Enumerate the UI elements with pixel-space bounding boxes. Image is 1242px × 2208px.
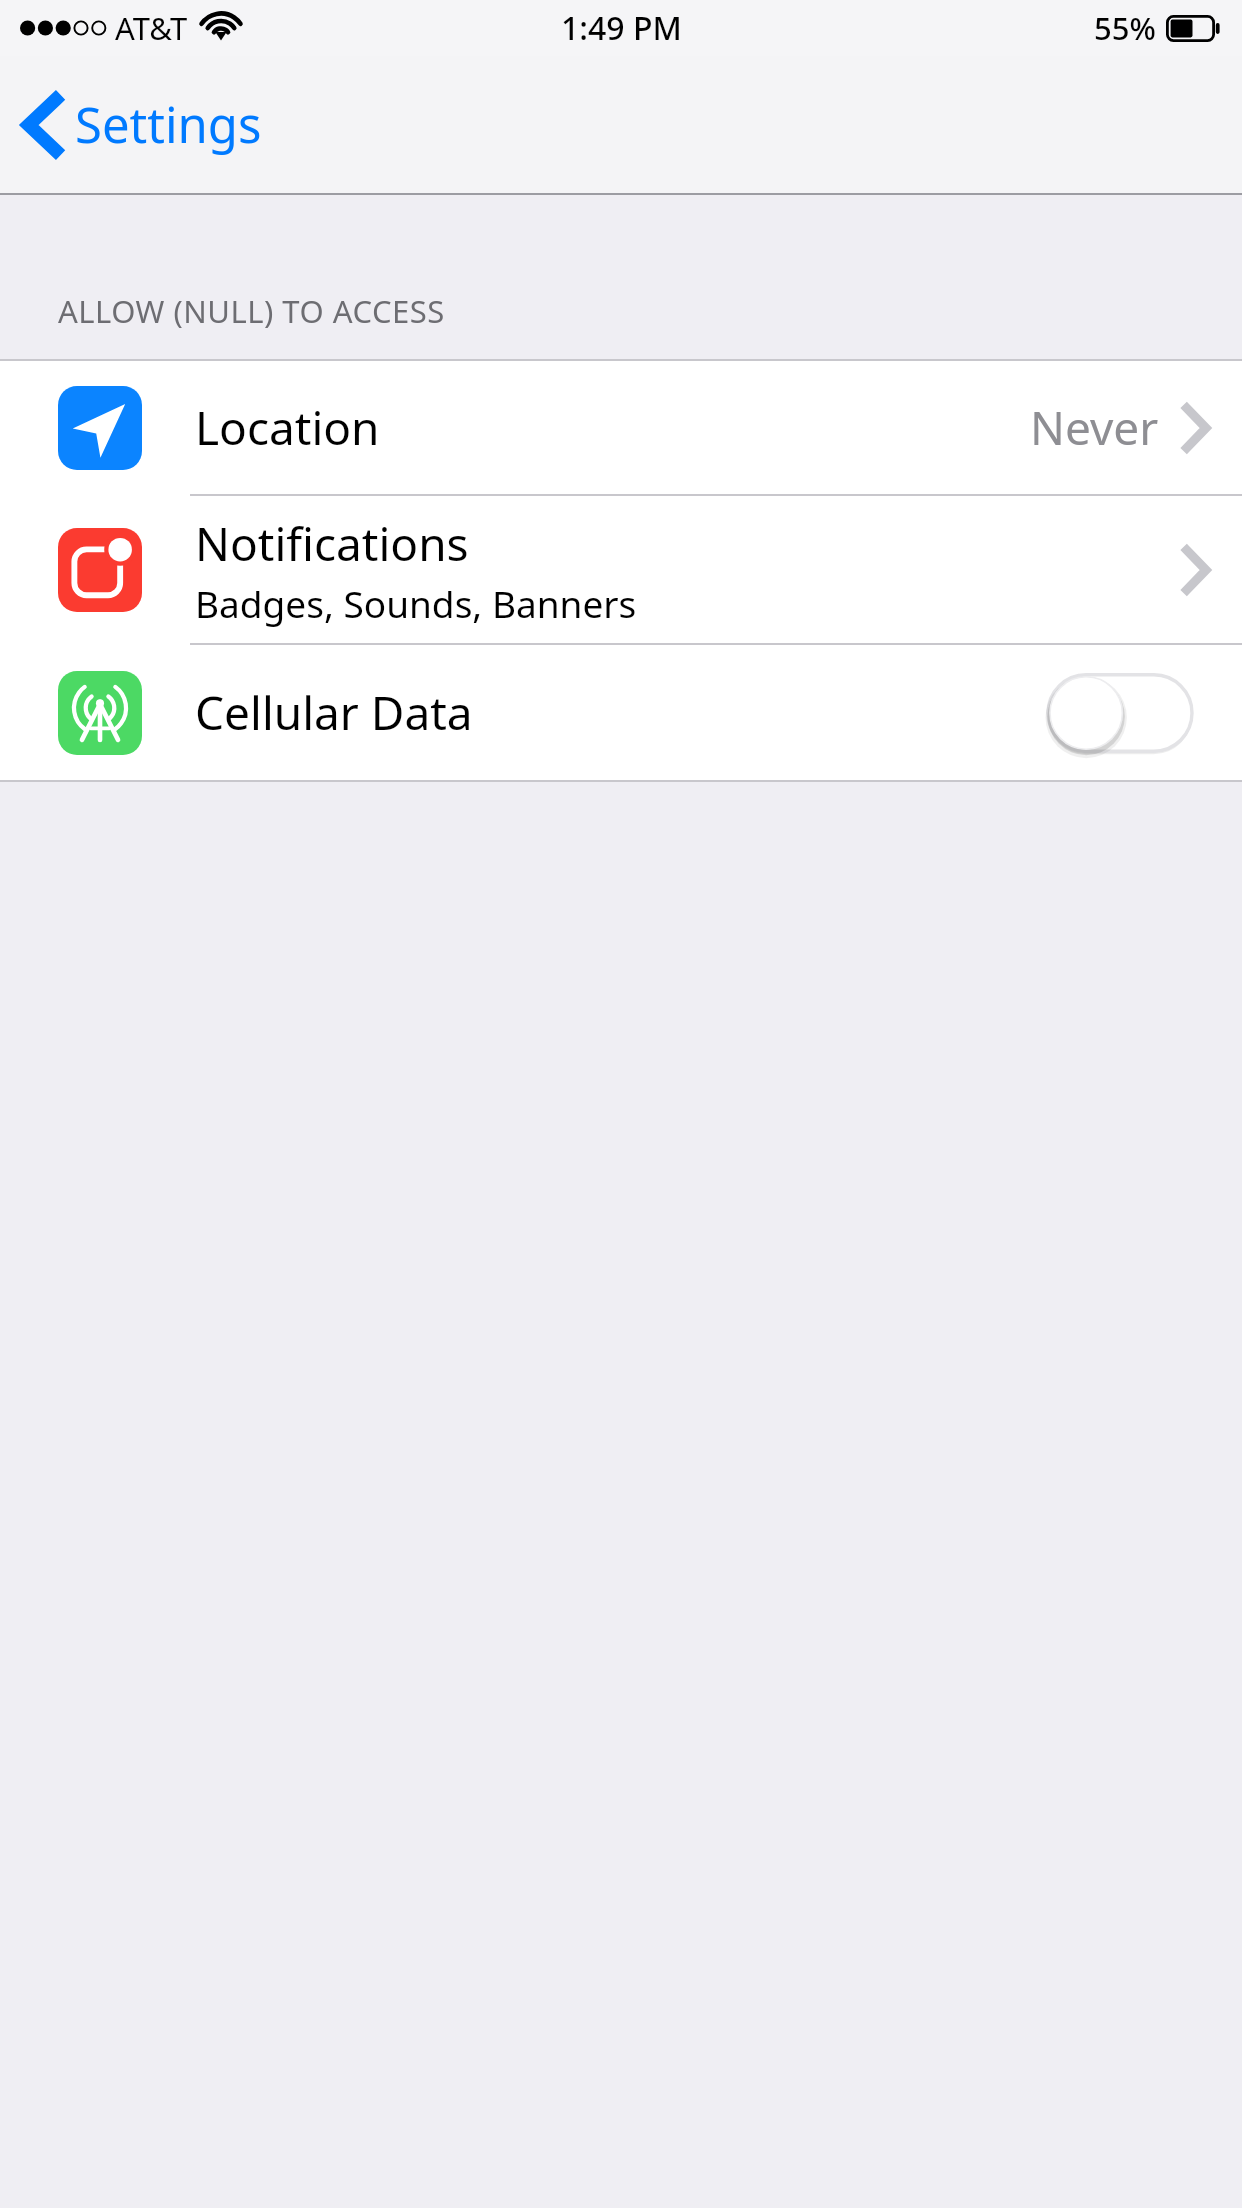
other: Back: [24, 96, 60, 154]
staticText: Never: [1030, 396, 1159, 459]
button[interactable]: Location: [0, 361, 1242, 494]
other: More: [1183, 406, 1208, 450]
other: More: [1183, 548, 1208, 592]
staticText: ALLOW (NULL) TO ACCESS: [58, 290, 445, 332]
staticText: AT&T: [115, 7, 188, 49]
staticText: 55%: [1094, 7, 1156, 49]
button[interactable]: Back: [0, 56, 290, 193]
staticText: 1:49 PM: [561, 6, 682, 50]
button[interactable]: Notifications: [0, 496, 1242, 643]
staticText: Notifications: [195, 512, 469, 575]
staticText: Settings: [75, 91, 262, 158]
button[interactable]: Cellular Data: [0, 645, 1242, 780]
staticText: Location: [195, 396, 380, 459]
staticText: Cellular Data: [195, 681, 473, 744]
staticText: Badges, Sounds, Banners: [195, 578, 637, 628]
button[interactable]: Cellular Data, off: [1046, 667, 1194, 759]
